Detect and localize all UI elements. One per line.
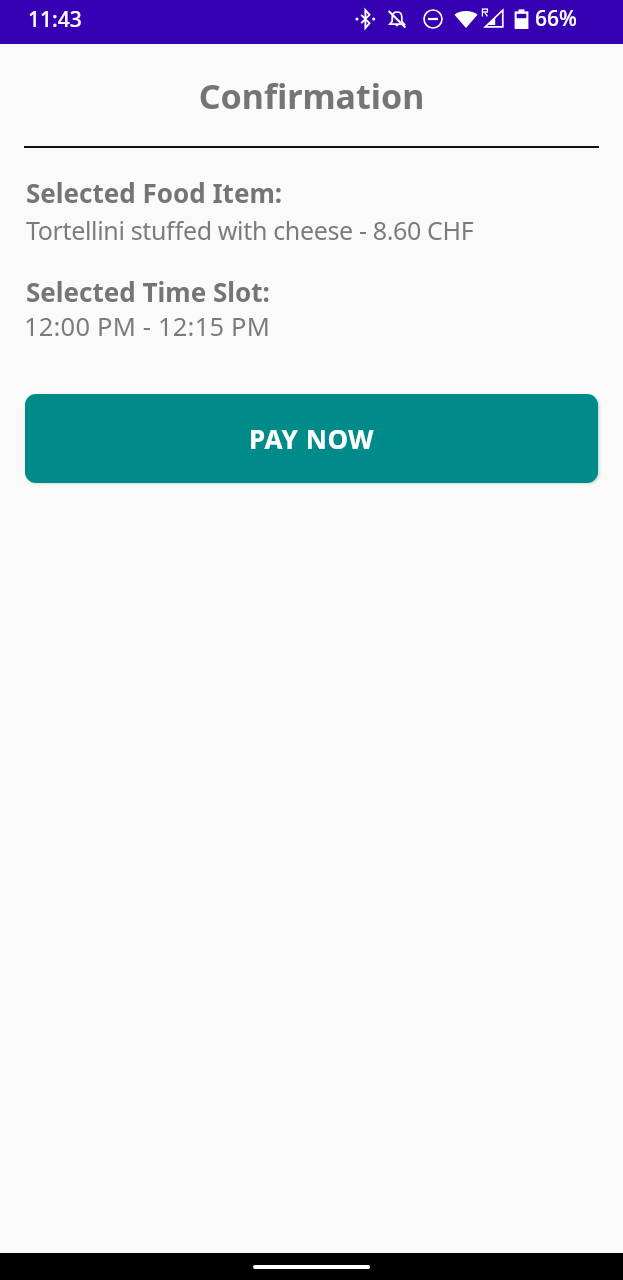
staticText: Tortellini stuffed with cheese - 8.60 CH… [26, 213, 474, 247]
other: Mobile signal [484, 9, 504, 28]
other: Bluetooth connected [356, 9, 374, 29]
staticText: 66% [535, 4, 577, 33]
button[interactable]: PAY NOW [25, 394, 598, 483]
other: Notifications silenced [387, 9, 407, 29]
staticText: PAY NOW [249, 421, 375, 456]
staticText: Selected Time Slot: [26, 274, 270, 309]
other: Roaming [481, 8, 489, 17]
staticText: 11:43 [28, 5, 82, 34]
staticText: Selected Food Item: [26, 175, 283, 210]
other: Do not disturb [423, 9, 443, 29]
staticText: Confirmation [0, 73, 623, 119]
other: Wi-Fi [454, 9, 478, 28]
staticText: 12:00 PM - 12:15 PM [24, 309, 270, 344]
button[interactable]: Home [253, 1265, 370, 1269]
other: Battery 66 percent [514, 9, 529, 29]
